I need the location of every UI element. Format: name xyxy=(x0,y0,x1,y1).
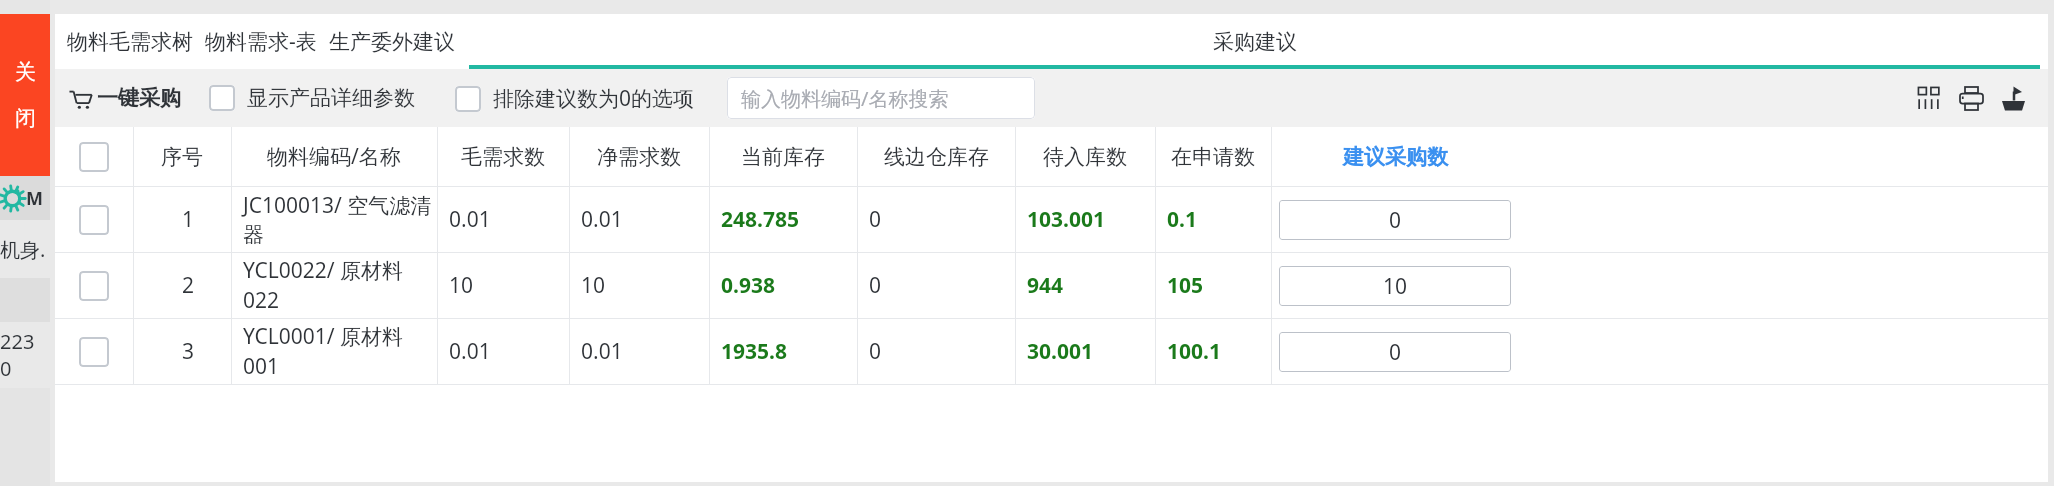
staticText: 1935.8 xyxy=(721,337,787,366)
staticText: 显示产品详细参数 xyxy=(247,85,415,111)
staticText: 物料编码/名称 xyxy=(267,142,401,171)
staticText: 采购建议 xyxy=(1213,29,1297,55)
button[interactable]: 关 xyxy=(0,14,50,176)
button[interactable]: 物料需求-表 xyxy=(199,14,323,69)
staticText: 1 xyxy=(182,205,195,234)
staticText: 0.01 xyxy=(449,205,491,234)
staticText: 0.938 xyxy=(721,271,775,300)
staticText: 0.01 xyxy=(581,205,623,234)
button[interactable]: Export xyxy=(1992,77,2034,119)
staticText: 待入库数 xyxy=(1043,144,1127,170)
button[interactable]: 10 xyxy=(1279,266,1511,306)
staticText: 248.785 xyxy=(721,205,799,234)
staticText: 物料需求-表 xyxy=(205,27,317,56)
button[interactable]: Column settings xyxy=(1908,77,1950,119)
button[interactable]: 采购建议 xyxy=(461,14,2048,69)
staticText: 0.01 xyxy=(581,337,623,366)
button[interactable]: 排除建议数为0的选项 xyxy=(455,84,695,113)
staticText: 建议采购数 xyxy=(1343,144,1448,170)
staticText: 0 xyxy=(869,337,882,366)
staticText: 10 xyxy=(1383,272,1408,301)
button[interactable]: 0 xyxy=(1279,200,1511,240)
staticText: 序号 xyxy=(161,144,203,170)
staticText: 0 xyxy=(1389,338,1402,367)
staticText: 944 xyxy=(1027,271,1064,300)
staticText: 净需求数 xyxy=(597,144,681,170)
staticText: 当前库存 xyxy=(741,144,825,170)
staticText: 在申请数 xyxy=(1171,144,1255,170)
staticText: 0 xyxy=(1389,206,1402,235)
button[interactable]: 生产委外建议 xyxy=(323,14,461,69)
staticText: 排除建议数为0的选项 xyxy=(493,84,695,113)
staticText: JC100013/ 空气滤清器 xyxy=(243,191,437,248)
staticText: 0 xyxy=(869,271,882,300)
button[interactable]: 0 xyxy=(1279,332,1511,372)
staticText: 10 xyxy=(449,271,474,300)
staticText: M xyxy=(26,186,43,211)
staticText: 线边仓库存 xyxy=(884,144,989,170)
button[interactable]: Print xyxy=(1950,77,1992,119)
staticText: YCL0001/ 原材料001 xyxy=(243,322,437,381)
staticText: 103.001 xyxy=(1027,205,1105,234)
staticText: 物料毛需求树 xyxy=(67,29,193,55)
staticText: 2 xyxy=(182,271,195,300)
button[interactable]: 显示产品详细参数 xyxy=(209,85,415,111)
staticText: 100.1 xyxy=(1167,337,1221,366)
staticText: 223 0 xyxy=(0,328,50,382)
staticText: 机身. xyxy=(0,236,46,263)
staticText: 0 xyxy=(869,205,882,234)
button[interactable]: 物料毛需求树 xyxy=(61,14,199,69)
staticText: YCL0022/ 原材料022 xyxy=(243,256,437,315)
staticText: 毛需求数 xyxy=(461,144,545,170)
staticText: 生产委外建议 xyxy=(329,29,455,55)
button[interactable]: 建议采购数 xyxy=(1271,127,1519,186)
staticText: 10 xyxy=(581,271,606,300)
staticText: 0.01 xyxy=(449,337,491,366)
staticText: 30.001 xyxy=(1027,337,1093,366)
button[interactable]: 一键采购 xyxy=(69,85,181,111)
staticText: 关 xyxy=(15,59,36,85)
staticText: 105 xyxy=(1167,271,1204,300)
staticText: 输入物料编码/名称搜索 xyxy=(741,85,949,112)
staticText: 3 xyxy=(182,337,195,366)
staticText: 一键采购 xyxy=(97,85,181,111)
staticText: 0.1 xyxy=(1167,205,1197,234)
button[interactable]: 输入物料编码/名称搜索 xyxy=(727,77,1035,119)
staticText: 闭 xyxy=(15,105,36,131)
